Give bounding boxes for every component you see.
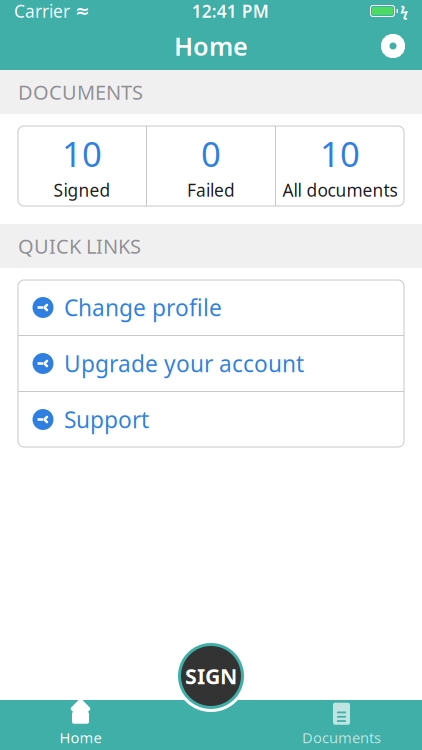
- staticText: ϟ: [400, 1, 408, 21]
- staticText: Home: [174, 29, 248, 63]
- button[interactable]: 0: [147, 126, 275, 206]
- staticText: All documents: [282, 178, 397, 201]
- staticText: 10: [62, 130, 102, 176]
- staticText: Carrier: [14, 0, 70, 22]
- staticText: Change profile: [64, 292, 222, 322]
- staticText: 0: [201, 130, 221, 176]
- button[interactable]: Home: [0, 700, 161, 750]
- staticText: ≈: [75, 1, 90, 21]
- staticText: Upgrade your account: [64, 348, 304, 378]
- staticText: SIGN: [185, 662, 237, 690]
- button[interactable]: Change profile: [18, 280, 404, 335]
- staticText: Failed: [187, 178, 235, 201]
- staticText: 10: [320, 130, 360, 176]
- button[interactable]: 10: [276, 126, 404, 206]
- staticText: Support: [64, 404, 149, 434]
- button[interactable]: Documents: [261, 700, 422, 750]
- button[interactable]: Upgrade your account: [18, 336, 404, 391]
- staticText: Signed: [53, 178, 110, 201]
- staticText: DOCUMENTS: [18, 79, 143, 105]
- staticText: Home: [59, 728, 101, 747]
- button[interactable]: 10: [18, 126, 146, 206]
- staticText: Documents: [302, 728, 381, 747]
- staticText: QUICK LINKS: [18, 233, 141, 259]
- button[interactable]: SIGN: [173, 638, 249, 714]
- staticText: 12:41 PM: [192, 0, 269, 22]
- button[interactable]: Support: [18, 392, 404, 447]
- button[interactable]: Settings: [364, 23, 422, 69]
